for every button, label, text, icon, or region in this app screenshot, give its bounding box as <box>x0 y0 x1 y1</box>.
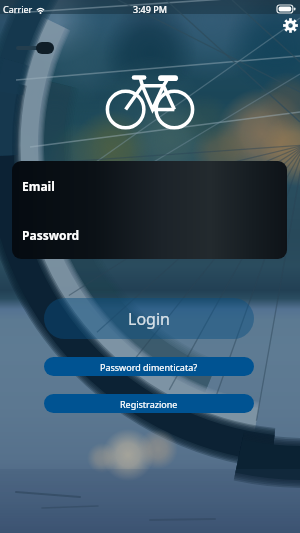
button[interactable]: Password dimenticata? <box>44 357 254 376</box>
staticText: Password dimenticata? <box>100 361 198 373</box>
staticText: Email <box>22 178 55 194</box>
button[interactable]: Email <box>12 161 287 210</box>
button[interactable]: Password <box>12 210 287 259</box>
staticText: Carrier <box>3 3 33 15</box>
button[interactable]: Login <box>44 298 254 339</box>
staticText: Password <box>22 227 80 243</box>
staticText: Registrazione <box>120 398 178 410</box>
staticText: 3:49 PM <box>133 3 167 15</box>
button[interactable]: Settings <box>279 14 300 36</box>
staticText: Login <box>128 308 170 330</box>
button[interactable]: Registrazione <box>44 394 254 413</box>
